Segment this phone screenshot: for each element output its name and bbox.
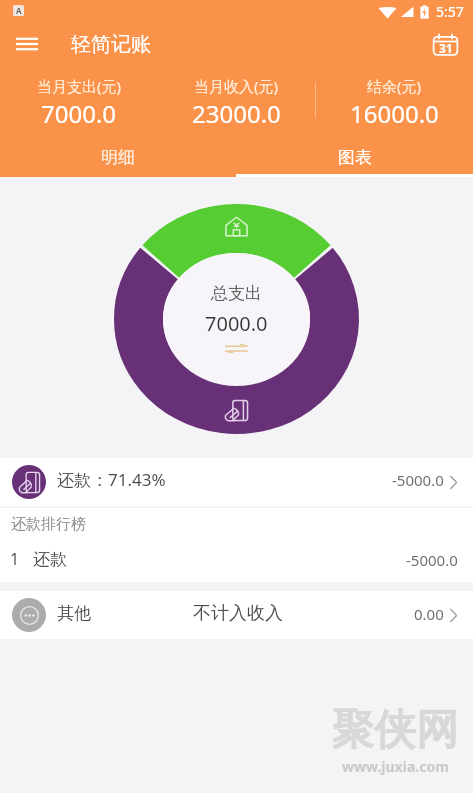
staticText: 明细 — [101, 147, 135, 168]
staticText: A — [16, 5, 22, 16]
staticText: -5000.0 — [406, 550, 458, 570]
button[interactable]: Select date — [426, 27, 464, 65]
staticText: 5:57 — [436, 2, 464, 21]
staticText: 轻简记账 — [71, 32, 151, 57]
button[interactable]: 还款：71.43% — [0, 458, 473, 506]
staticText: 其他 — [57, 603, 91, 624]
staticText: 还款排行榜 — [11, 515, 86, 534]
staticText: www.juxia.com — [342, 757, 449, 776]
staticText: 不计入收入 — [193, 602, 283, 625]
staticText: 总支出 — [211, 283, 262, 304]
staticText: 还款 — [33, 549, 67, 570]
staticText: 0.00 — [414, 604, 444, 624]
staticText: 还款：71.43% — [57, 468, 166, 491]
staticText: -5000.0 — [392, 470, 444, 490]
staticText: 聚侠网 — [332, 704, 458, 757]
staticText: 图表 — [338, 147, 372, 168]
button[interactable]: 其他 — [0, 591, 473, 639]
staticText: 当月收入(元) — [194, 76, 279, 96]
staticText: 16000.0 — [350, 97, 439, 130]
staticText: 1 — [10, 548, 20, 570]
staticText: 31 — [439, 40, 453, 56]
button[interactable]: 1 — [0, 540, 473, 582]
staticText: 7000.0 — [205, 310, 268, 337]
staticText: 7000.0 — [41, 97, 117, 130]
button[interactable]: 图表 — [236, 132, 473, 177]
button[interactable]: 明细 — [0, 132, 236, 177]
staticText: 结余(元) — [367, 76, 422, 96]
staticText: 23000.0 — [192, 97, 281, 130]
button[interactable]: Open navigation menu — [8, 27, 46, 65]
staticText: 当月支出(元) — [37, 76, 122, 96]
